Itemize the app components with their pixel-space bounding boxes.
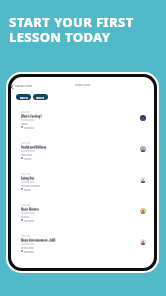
staticText: Health and Wellness [21,145,47,148]
staticText: Choose a lesson [75,84,91,87]
staticText: Wendy [21,122,28,125]
staticText: Advanced [24,158,32,160]
staticText: 30 minute lesson [21,243,35,245]
staticText: 30 minute lesson [21,181,35,183]
staticText: Music Matters [21,208,39,211]
staticText: Health and Wellness [21,146,47,149]
staticText: Wendy [21,123,28,126]
button[interactable]: 10:00 - 10:30 [11,134,154,165]
staticText: Eating Out [21,177,35,180]
staticText: START YOUR FIRST LESSON TODAY [9,13,134,46]
staticText: 12:00 - 12:30 [21,235,30,237]
staticText: 10:00 - 10:30 [21,111,30,113]
staticText: 30 minute lesson [21,211,35,213]
button[interactable]: 10:00 - 10:30 [11,103,154,134]
staticText: 30 minute lesson [21,119,35,121]
staticText: What's Cooking? [21,115,42,118]
staticText: 11:00 - 11:30 [21,173,30,175]
staticText: Intermediate [24,127,34,129]
staticText: 30 minute lesson [21,180,35,182]
staticText: 30 minute lesson [21,212,35,214]
other: Back [11,85,14,89]
staticText: Music Matters [21,207,39,210]
button[interactable]: Book All [16,94,31,100]
staticText: Intermediate [24,219,34,221]
staticText: Movie Entertainment - 2d45 [21,239,56,242]
staticText: Book All [20,96,28,99]
staticText: 11:00 - 11:30 [21,203,30,205]
staticText: Intermediate [24,250,34,252]
staticText: Schedule a lesson [15,84,32,87]
staticText: Dj Storm [21,215,30,218]
button[interactable]: Choose a lesson [75,83,91,86]
staticText: 30 minute lesson [21,149,35,151]
staticText: 10:00 - 10:30 [21,141,30,143]
staticText: Book All [20,97,28,100]
staticText: Open All [36,97,45,100]
staticText: Courtney Strickland [21,185,40,188]
staticText: Beginner [24,189,31,191]
staticText: Advanced [24,157,32,159]
staticText: Intermediate [24,126,34,128]
staticText: Schedule a lesson [15,85,32,88]
staticText: Beginner [24,188,31,190]
staticText: Scott Arthur [21,153,33,156]
staticText: Scott Arthur [21,154,33,157]
staticText: 30 minute lesson [21,118,35,120]
staticText: Sandro Swain [21,247,34,250]
staticText: Intermediate [24,220,34,222]
button[interactable]: 12:00 - 12:30 [11,227,154,258]
staticText: What's Cooking? [21,114,42,117]
button[interactable]: 11:00 - 11:30 [11,165,154,196]
staticText: 10:00 - 10:30 [21,110,30,112]
staticText: 11:00 - 11:30 [21,172,30,174]
button[interactable]: 11:00 - 11:30 [11,196,154,227]
staticText: 12:00 - 12:30 [21,234,30,236]
staticText: 10:00 - 10:30 [21,142,30,144]
staticText: Choose a lesson [75,83,91,86]
button[interactable]: Open All [33,94,48,100]
staticText: Courtney Strickland [21,184,40,187]
staticText: Movie Entertainment - 2d45 [21,238,56,241]
staticText: 11:00 - 11:30 [21,204,30,206]
staticText: Sandro Swain [21,246,34,249]
staticText: Dj Storm [21,216,30,219]
staticText: Intermediate [24,251,34,253]
staticText: Open All [36,96,45,99]
button[interactable]: Back [11,83,33,89]
staticText: Eating Out [21,176,35,179]
staticText: 30 minute lesson [21,150,35,152]
staticText: 30 minute lesson [21,242,35,244]
